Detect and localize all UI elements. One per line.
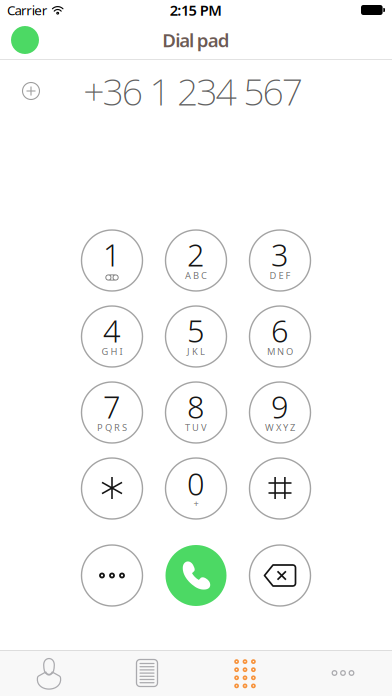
- staticText: M N O: [267, 345, 293, 358]
- button[interactable]: Star: [81, 458, 142, 519]
- staticText: T U V: [185, 421, 207, 434]
- staticText: 2:15 PM: [170, 0, 222, 20]
- button[interactable]: Pound: [249, 458, 310, 519]
- button[interactable]: Account: [0, 20, 48, 60]
- staticText: A B C: [185, 269, 207, 282]
- button[interactable]: 6: [249, 306, 310, 367]
- staticText: Dial pad: [162, 28, 230, 52]
- button[interactable]: 2: [165, 230, 226, 291]
- button[interactable]: Call log: [98, 650, 196, 696]
- staticText: 5: [187, 310, 205, 351]
- button[interactable]: Add contact: [11, 71, 51, 111]
- staticText: 4: [103, 310, 121, 351]
- staticText: +36 1 234 567: [83, 66, 303, 116]
- button[interactable]: More options: [81, 545, 142, 606]
- staticText: 9: [271, 386, 289, 427]
- staticText: Carrier: [7, 1, 48, 19]
- staticText: 3: [271, 234, 289, 275]
- button[interactable]: Dial pad: [196, 650, 294, 696]
- staticText: +: [193, 497, 198, 510]
- staticText: 1: [103, 234, 121, 275]
- staticText: 8: [187, 386, 205, 427]
- staticText: G H I: [101, 345, 122, 358]
- staticText: 2: [187, 234, 205, 275]
- button[interactable]: Contacts: [0, 650, 98, 696]
- button[interactable]: 1: [81, 230, 142, 291]
- button[interactable]: 5: [165, 306, 226, 367]
- button[interactable]: 4: [81, 306, 142, 367]
- staticText: P Q R S: [97, 421, 127, 434]
- button[interactable]: Call: [165, 545, 226, 606]
- button[interactable]: 9: [249, 382, 310, 443]
- button[interactable]: 8: [165, 382, 226, 443]
- button[interactable]: 0: [165, 458, 226, 519]
- staticText: W X Y Z: [265, 421, 295, 434]
- staticText: 7: [103, 386, 121, 427]
- staticText: D E F: [269, 269, 290, 282]
- button[interactable]: More: [294, 650, 392, 696]
- staticText: J K L: [187, 345, 205, 358]
- button[interactable]: Delete: [249, 545, 310, 606]
- button[interactable]: 3: [249, 230, 310, 291]
- staticText: 6: [271, 310, 289, 351]
- staticText: 0: [187, 463, 205, 504]
- button[interactable]: 7: [81, 382, 142, 443]
